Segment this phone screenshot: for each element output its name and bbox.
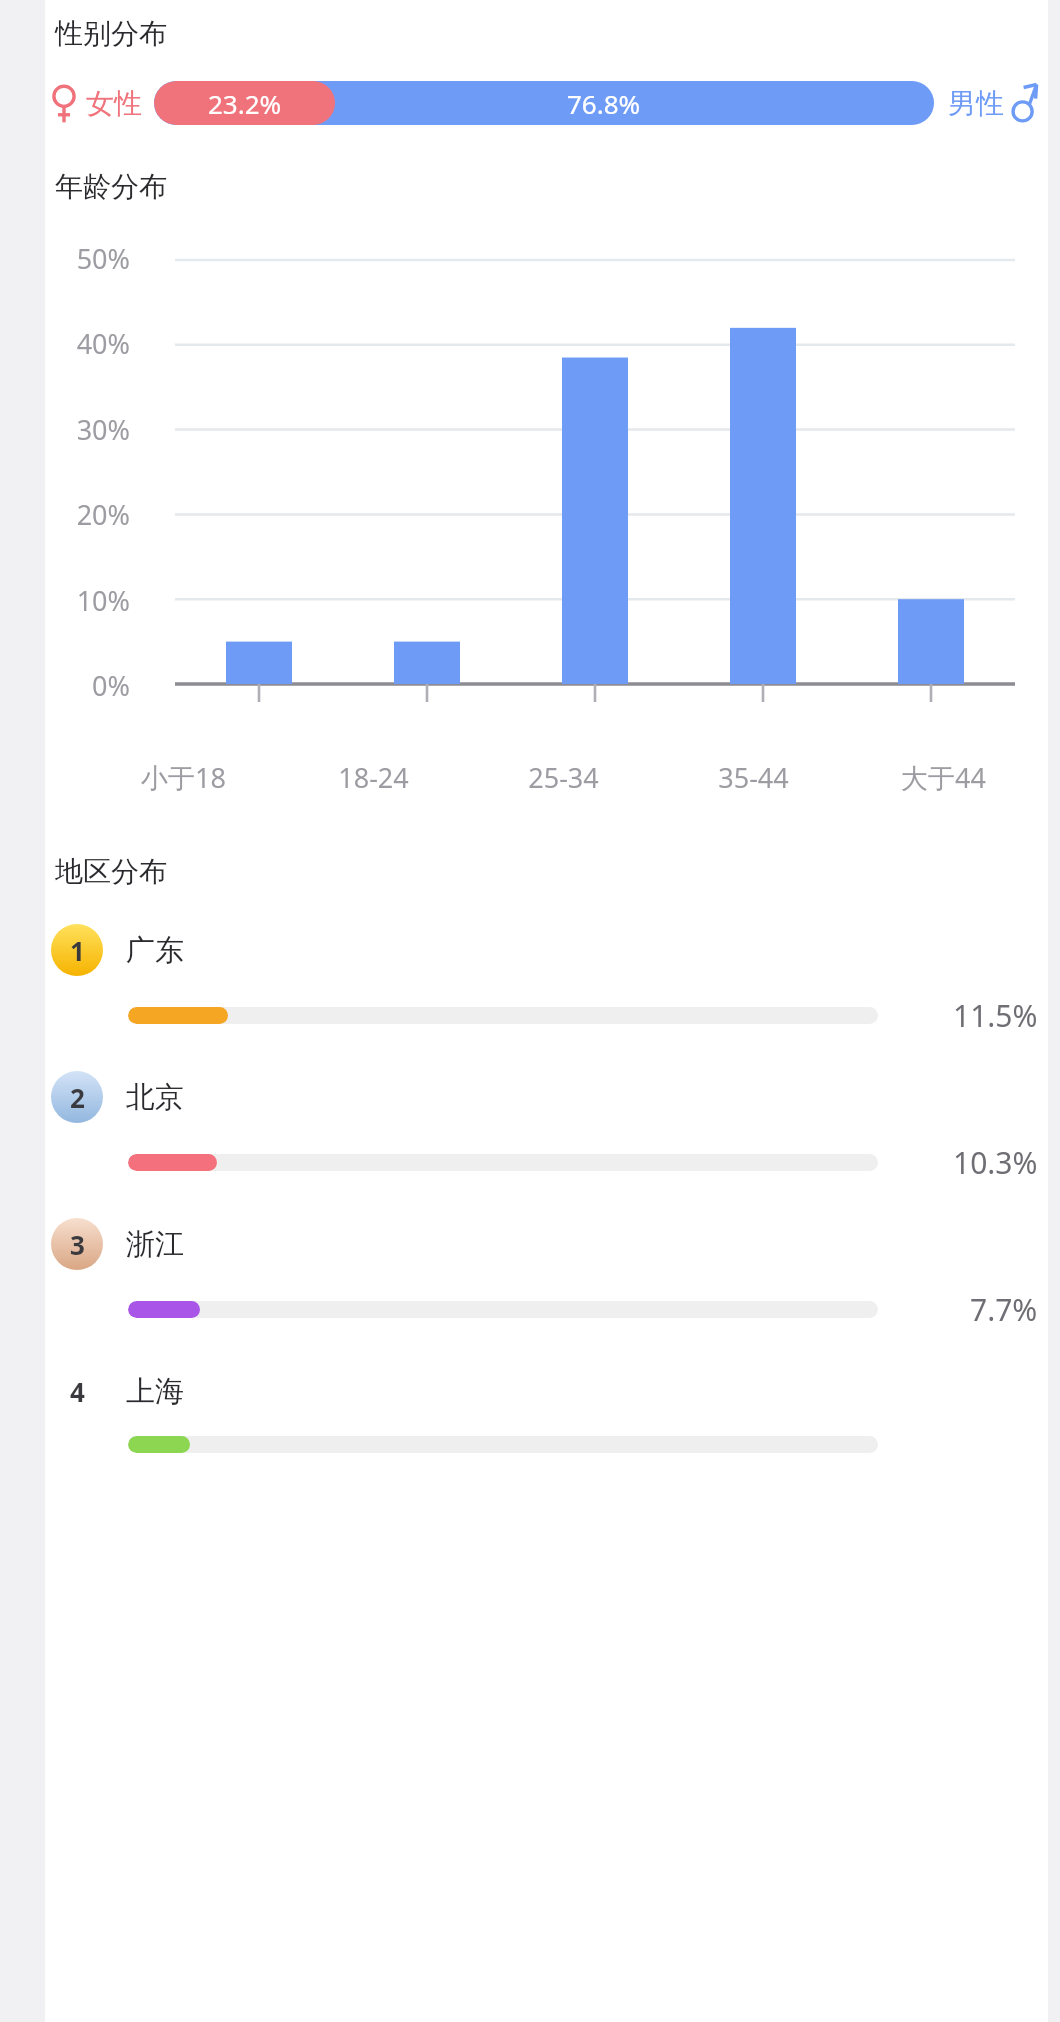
staticText: 男性 bbox=[948, 86, 1004, 121]
staticText: 10.3% bbox=[953, 1142, 1038, 1183]
staticText: 25-34 bbox=[528, 759, 599, 796]
staticText: 0% bbox=[92, 667, 130, 704]
staticText: 20% bbox=[76, 496, 130, 533]
other: Female bbox=[50, 82, 78, 124]
staticText: 40% bbox=[76, 325, 130, 362]
button[interactable]: 3 bbox=[0, 1209, 1060, 1356]
staticText: 年龄分布 bbox=[55, 169, 167, 204]
staticText: 7.7% bbox=[970, 1289, 1038, 1330]
button[interactable]: 1 bbox=[0, 915, 1060, 1062]
staticText: 1 bbox=[70, 933, 85, 968]
staticText: 76.8% bbox=[567, 86, 641, 121]
other: Male bbox=[1010, 82, 1038, 124]
staticText: 小于18 bbox=[141, 759, 226, 796]
staticText: 大于44 bbox=[901, 759, 986, 796]
staticText: 浙江 bbox=[126, 1226, 184, 1263]
staticText: 性别分布 bbox=[55, 16, 167, 51]
staticText: 3 bbox=[70, 1227, 85, 1262]
staticText: 女性 bbox=[86, 86, 142, 121]
staticText: 北京 bbox=[126, 1079, 184, 1116]
staticText: 广东 bbox=[126, 932, 184, 969]
staticText: 35-44 bbox=[718, 759, 789, 796]
staticText: 30% bbox=[76, 411, 130, 448]
staticText: 4 bbox=[70, 1374, 85, 1409]
staticText: 上海 bbox=[126, 1373, 184, 1410]
staticText: 23.2% bbox=[208, 86, 282, 121]
button[interactable]: 2 bbox=[0, 1062, 1060, 1209]
staticText: 11.5% bbox=[953, 995, 1038, 1036]
button[interactable]: 4 bbox=[0, 1356, 1060, 1479]
staticText: 2 bbox=[70, 1080, 85, 1115]
button[interactable]: Female bbox=[50, 75, 1038, 131]
staticText: 地区分布 bbox=[55, 854, 167, 889]
staticText: 10% bbox=[76, 582, 130, 619]
staticText: 50% bbox=[76, 240, 130, 277]
staticText: 18-24 bbox=[338, 759, 409, 796]
